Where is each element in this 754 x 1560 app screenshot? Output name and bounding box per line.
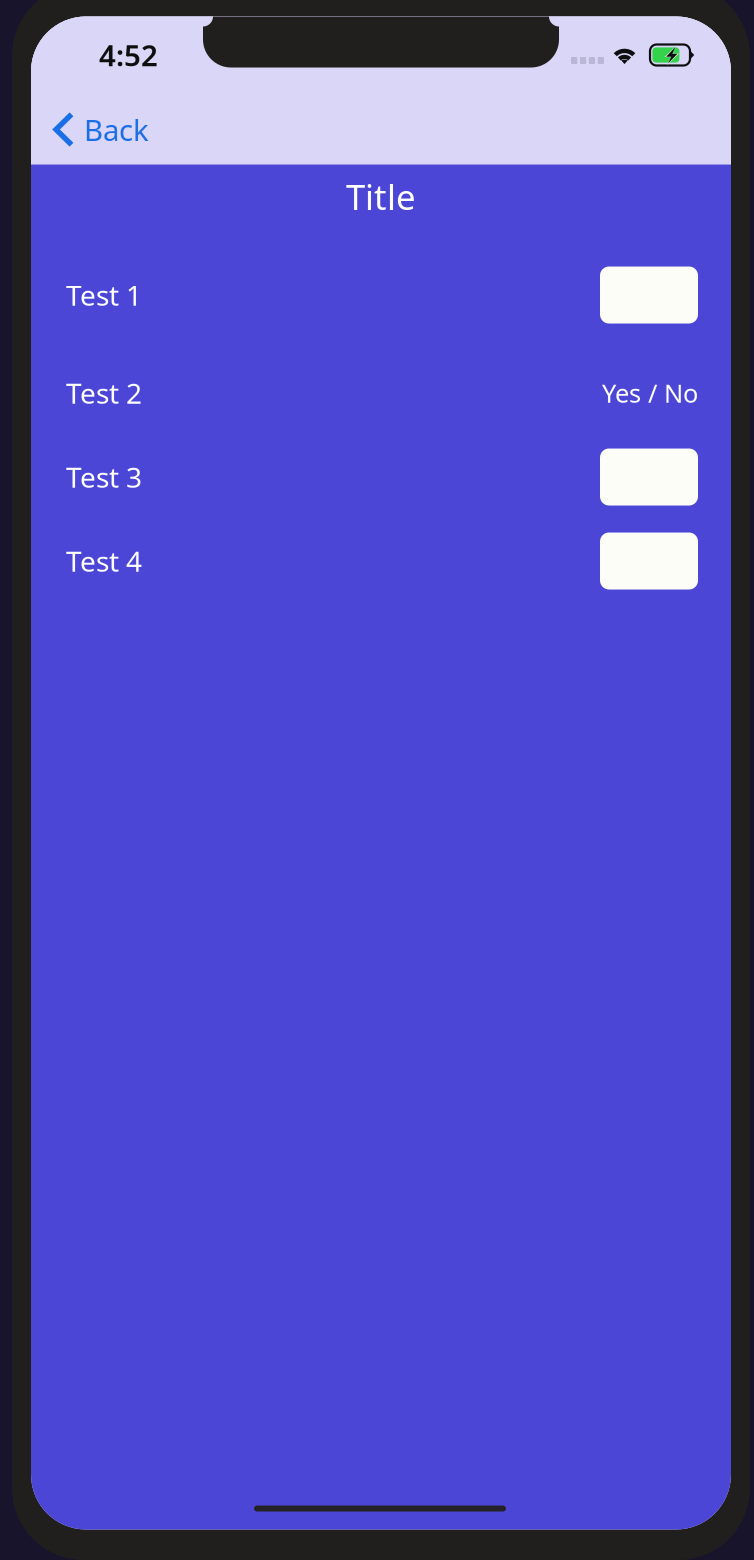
button[interactable]: Test 4 text field bbox=[600, 532, 698, 589]
button[interactable]: Test 1 text field bbox=[600, 266, 698, 323]
button[interactable]: Back bbox=[31, 98, 169, 161]
button[interactable]: Yes / No bbox=[602, 364, 698, 421]
staticText: Test 3 bbox=[66, 458, 142, 496]
staticText: Yes / No bbox=[602, 376, 698, 410]
staticText: Title bbox=[346, 173, 416, 219]
staticText: 4:52 bbox=[99, 35, 158, 74]
staticText: Test 2 bbox=[66, 374, 142, 412]
button[interactable]: Test 3 text field bbox=[600, 448, 698, 505]
staticText: Back bbox=[84, 110, 149, 149]
staticText: Test 4 bbox=[66, 542, 142, 580]
staticText: Test 1 bbox=[66, 276, 142, 314]
